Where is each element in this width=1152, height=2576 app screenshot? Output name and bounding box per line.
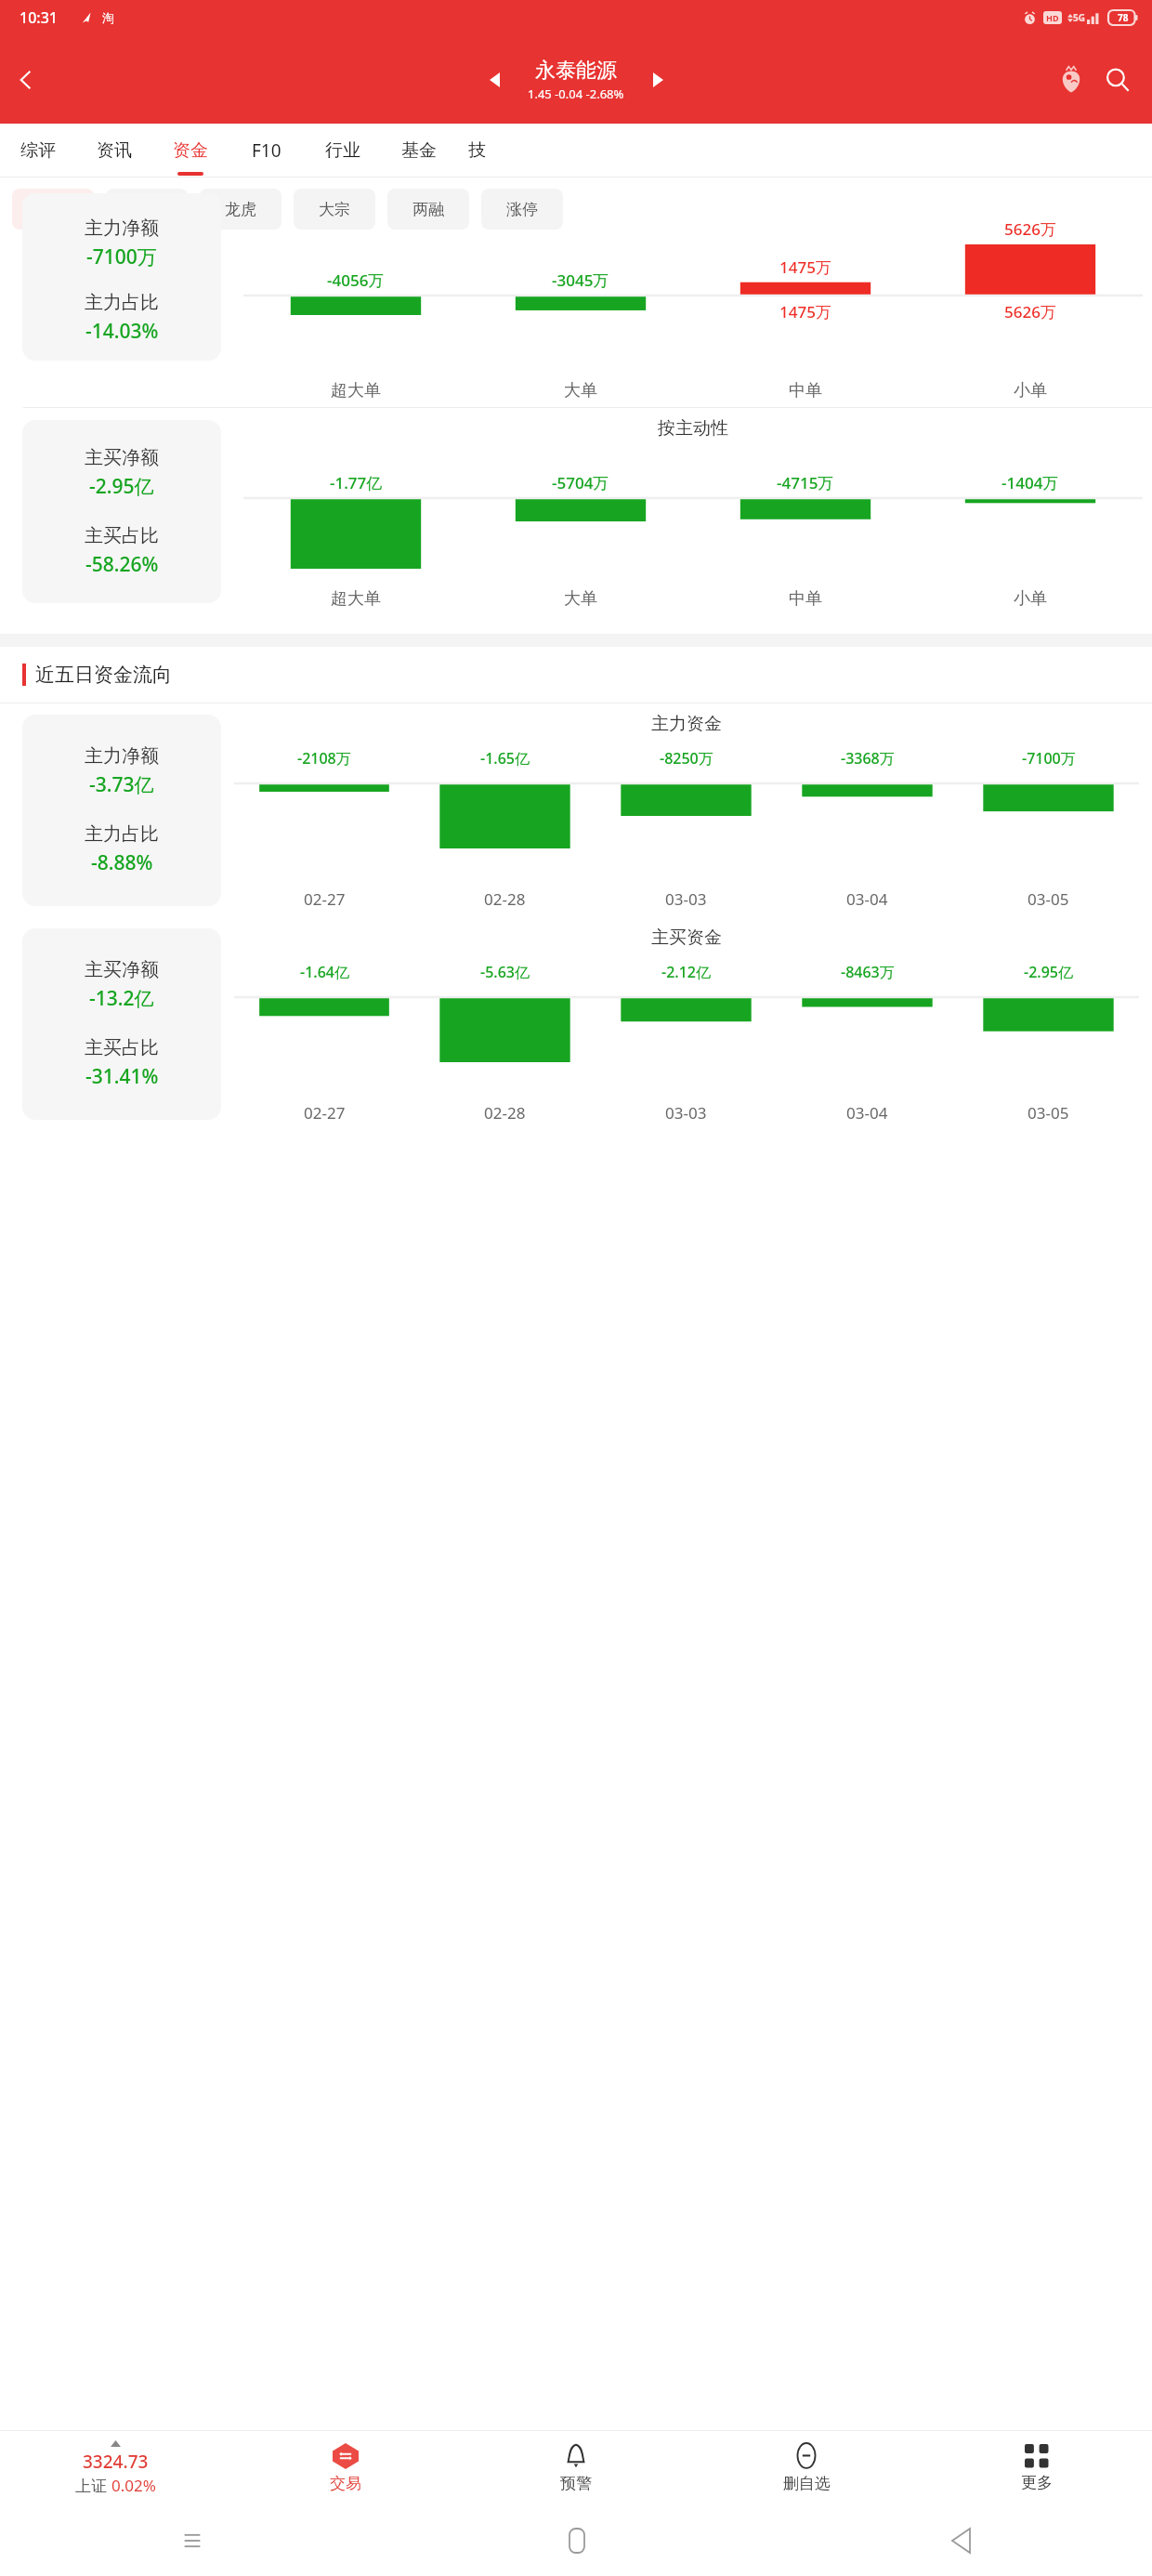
button[interactable]: 主力净额 xyxy=(22,715,221,906)
staticText: 03-05 xyxy=(1028,1102,1069,1124)
staticText: 预警 xyxy=(560,2474,592,2493)
staticText: 主力净额 xyxy=(85,744,159,768)
staticText: 综评 xyxy=(20,139,56,162)
staticText: F10 xyxy=(252,138,281,163)
staticText: -31.41% xyxy=(85,1063,159,1090)
staticText: 02-27 xyxy=(304,1102,346,1124)
staticText: 更多 xyxy=(1021,2473,1053,2492)
button[interactable]: Search xyxy=(1094,57,1141,103)
button[interactable]: 更多 xyxy=(922,2431,1152,2505)
staticText: 主买占比 xyxy=(85,1036,159,1059)
button[interactable]: Next stock xyxy=(641,63,674,97)
button[interactable]: 行业 xyxy=(305,124,381,177)
staticText: -5.63亿 xyxy=(480,962,530,982)
button[interactable]: F10 xyxy=(229,124,305,177)
staticText: 上证 xyxy=(75,2475,111,2496)
button[interactable]: 资金 xyxy=(152,124,229,177)
button[interactable]: 北上 xyxy=(106,189,188,230)
staticText: 大宗 xyxy=(319,200,350,219)
button[interactable]: Assistant xyxy=(1048,57,1094,103)
staticText: 大单 xyxy=(564,588,597,610)
button[interactable]: Back xyxy=(0,54,52,106)
staticText: 大单 xyxy=(564,380,597,401)
staticText: 两融 xyxy=(412,200,444,219)
staticText: -2.95亿 xyxy=(89,473,154,500)
staticText: 小单 xyxy=(1014,588,1047,610)
staticText: 淘 xyxy=(102,10,114,25)
button[interactable]: Home xyxy=(385,2505,768,2576)
staticText: 03-04 xyxy=(846,1102,888,1124)
button[interactable]: 主力净额 xyxy=(22,193,221,361)
button[interactable]: 涨停 xyxy=(481,189,563,230)
staticText: -5704万 xyxy=(552,472,609,493)
staticText: -4715万 xyxy=(777,472,834,493)
staticText: -1404万 xyxy=(1001,472,1059,493)
staticText: 资金 xyxy=(173,139,208,162)
button[interactable]: 两融 xyxy=(387,189,469,230)
staticText: 02-27 xyxy=(304,888,346,910)
staticText: 主力占比 xyxy=(85,291,159,314)
staticText: 行业 xyxy=(325,139,360,162)
button[interactable]: 大宗 xyxy=(294,189,375,230)
button[interactable]: 基金 xyxy=(381,124,457,177)
staticText: 3324.73 xyxy=(83,2450,149,2474)
staticText: -1.64亿 xyxy=(300,962,349,982)
button[interactable]: Previous stock xyxy=(478,63,511,97)
staticText: -1.65亿 xyxy=(480,748,530,769)
staticText: 5626万 xyxy=(1004,218,1056,240)
staticText: 龙虎 xyxy=(225,200,256,219)
staticText: 5626万 xyxy=(1004,301,1056,322)
staticText: 1.45 -0.04 -2.68% xyxy=(528,85,624,102)
staticText: 主买净额 xyxy=(85,446,159,469)
button[interactable]: 龙虎 xyxy=(200,189,281,230)
staticText: 1475万 xyxy=(779,301,831,322)
button[interactable]: 3324.73 xyxy=(0,2431,230,2505)
staticText: 1475万 xyxy=(779,256,831,278)
staticText: 按主动性 xyxy=(658,417,728,440)
button[interactable]: 综评 xyxy=(0,124,76,177)
staticText: 超大单 xyxy=(331,380,381,401)
staticText: 0.02% xyxy=(111,2475,156,2496)
staticText: -2.95亿 xyxy=(1024,962,1073,982)
staticText: -8.88% xyxy=(91,849,153,876)
staticText: -2.12亿 xyxy=(661,962,711,982)
button[interactable]: 删自选 xyxy=(691,2431,922,2505)
staticText: -3.73亿 xyxy=(89,771,154,798)
staticText: -58.26% xyxy=(85,551,159,578)
staticText: -4056万 xyxy=(327,269,385,291)
staticText: -13.2亿 xyxy=(89,985,154,1012)
staticText: 03-03 xyxy=(665,888,707,910)
button[interactable]: 资讯 xyxy=(76,124,152,177)
button[interactable]: 技 xyxy=(457,124,496,177)
staticText: -8250万 xyxy=(660,748,713,769)
staticText: 资讯 xyxy=(97,139,132,162)
staticText: 主买净额 xyxy=(85,958,159,981)
button[interactable]: Back xyxy=(768,2505,1152,2576)
staticText: 中单 xyxy=(789,588,822,610)
staticText: 基金 xyxy=(401,139,437,162)
staticText: -3368万 xyxy=(841,748,895,769)
staticText: 02-28 xyxy=(484,888,526,910)
staticText: -2108万 xyxy=(297,748,351,769)
staticText: -7100万 xyxy=(86,243,157,270)
staticText: -1.77亿 xyxy=(330,472,383,493)
button[interactable]: 主买净额 xyxy=(22,928,221,1120)
staticText: 主力净额 xyxy=(85,217,159,240)
staticText: 技 xyxy=(468,139,486,162)
button[interactable]: 交易 xyxy=(230,2431,461,2505)
staticText: 主买资金 xyxy=(651,927,722,949)
staticText: 主力资金 xyxy=(651,713,722,735)
staticText: 涨停 xyxy=(506,200,538,219)
staticText: 10:31 xyxy=(20,7,58,28)
staticText: 02-28 xyxy=(484,1102,526,1124)
staticText: 主买占比 xyxy=(85,524,159,547)
button[interactable]: 主买净额 xyxy=(22,420,221,603)
staticText: 03-05 xyxy=(1028,888,1069,910)
staticText: HD xyxy=(1046,12,1059,23)
button[interactable]: 预警 xyxy=(461,2431,691,2505)
staticText: 近五日资金流向 xyxy=(35,663,172,687)
button[interactable]: 资金 xyxy=(12,189,94,230)
button[interactable]: Recents xyxy=(0,2505,385,2576)
